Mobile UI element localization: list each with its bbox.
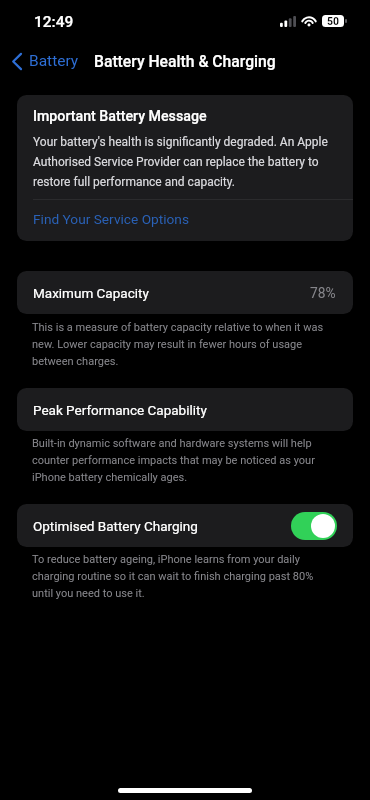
staticText: Find Your Service Options xyxy=(33,211,189,227)
button[interactable]: Maximum Capacity xyxy=(17,271,353,314)
staticText: Built-in dynamic software and hardware s… xyxy=(32,437,328,484)
staticText: Maximum Capacity xyxy=(33,285,149,301)
staticText: To reduce battery ageing, iPhone learns … xyxy=(32,553,328,600)
button[interactable]: Find Your Service Options xyxy=(17,200,353,241)
staticText: 78% xyxy=(310,285,336,301)
staticText: This is a measure of battery capacity re… xyxy=(32,321,328,368)
staticText: 50 xyxy=(327,15,340,27)
staticText: Battery Health & Charging xyxy=(94,52,276,70)
button[interactable]: Optimised Battery Charging xyxy=(17,504,353,547)
staticText: Battery xyxy=(29,52,79,70)
staticText: Peak Performance Capability xyxy=(33,402,207,418)
button[interactable]: Peak Performance Capability xyxy=(17,388,353,431)
staticText: Optimised Battery Charging xyxy=(33,518,198,534)
button[interactable]: Optimised Battery Charging xyxy=(291,512,337,540)
staticText: Your battery's health is significantly d… xyxy=(33,135,339,189)
staticText: 12:49 xyxy=(34,13,74,31)
staticText: Important Battery Message xyxy=(33,108,207,125)
button[interactable]: Battery xyxy=(6,48,87,74)
